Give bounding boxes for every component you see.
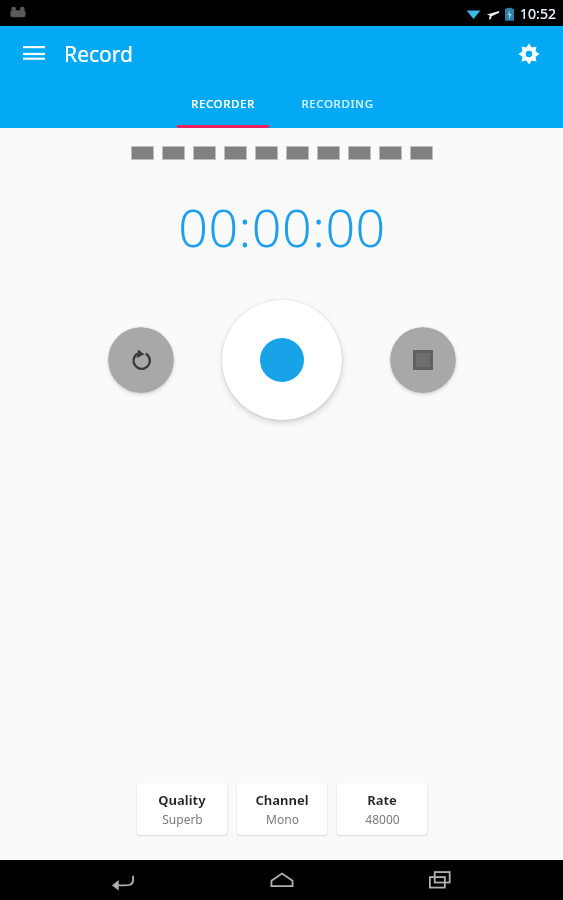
staticText: 00:00:00 [178,191,386,262]
staticText: RECORDING [301,96,374,112]
button[interactable]: Rate [337,783,427,835]
button[interactable]: Home [246,860,318,900]
staticText: Record [64,40,133,69]
staticText: Mono [266,811,299,827]
staticText: 10:52 [520,4,556,23]
staticText: 48000 [365,811,400,827]
button[interactable]: Recent apps [404,860,476,900]
staticText: RECORDER [191,96,255,112]
staticText: Rate [367,791,397,809]
button[interactable]: Settings [507,32,551,76]
staticText: Superb [162,811,203,827]
button[interactable]: RECORDING [287,82,387,128]
button[interactable]: Quality [137,783,227,835]
button[interactable]: Open navigation menu [12,32,56,76]
button[interactable]: Channel [237,783,327,835]
staticText: Quality [158,791,206,809]
staticText: Channel [255,791,309,809]
button[interactable]: Restart recording [108,327,174,393]
button[interactable]: Record [222,300,342,420]
button[interactable]: RECORDER [177,82,269,128]
button[interactable]: Back [87,860,159,900]
button[interactable]: Stop recording [390,327,456,393]
